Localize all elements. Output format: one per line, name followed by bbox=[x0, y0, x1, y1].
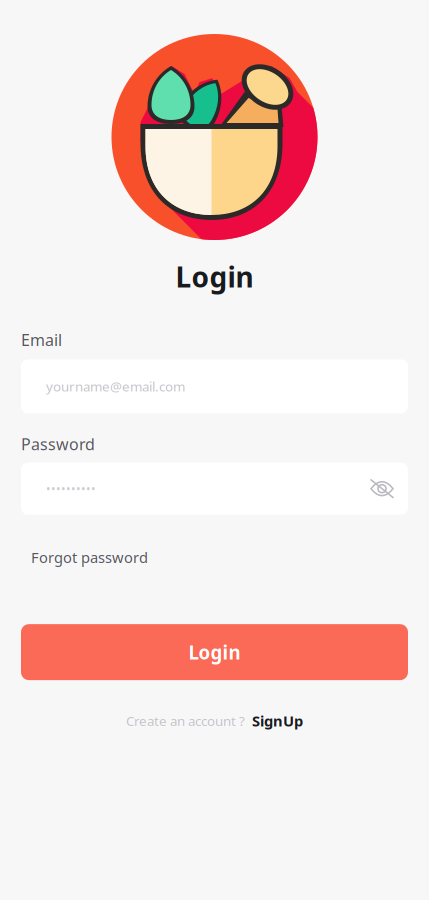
staticText: Login bbox=[175, 258, 253, 295]
button[interactable]: SignUp bbox=[252, 711, 303, 731]
staticText: Password bbox=[21, 433, 95, 455]
staticText: Forgot password bbox=[31, 548, 148, 567]
staticText: SignUp bbox=[252, 711, 303, 731]
staticText: Create an account ? bbox=[126, 712, 245, 730]
button[interactable]: Forgot password bbox=[31, 548, 148, 567]
button[interactable]: Login bbox=[21, 624, 408, 680]
staticText: Login bbox=[188, 640, 240, 665]
staticText: yourname@email.com bbox=[46, 378, 185, 395]
staticText: Email bbox=[21, 329, 62, 350]
button[interactable]: Show password bbox=[369, 478, 395, 500]
staticText: •••••••••• bbox=[46, 481, 96, 497]
